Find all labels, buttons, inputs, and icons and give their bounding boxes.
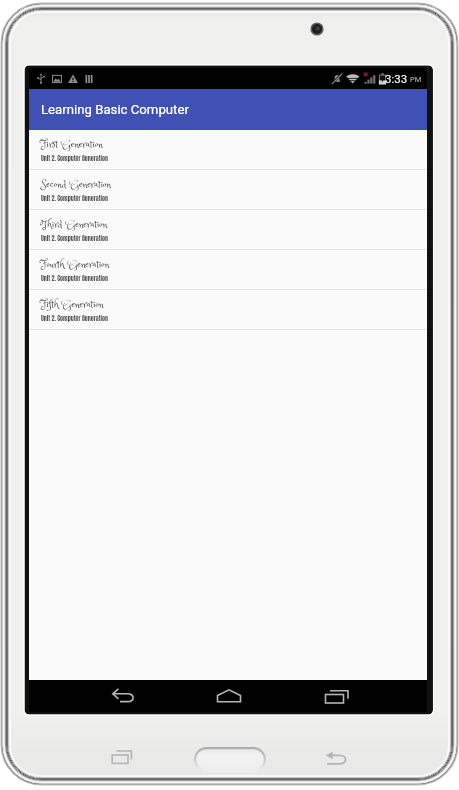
staticText: Second Generation: [41, 177, 111, 193]
button[interactable]: First Generation: [29, 130, 427, 170]
staticText: Unit 2. Computer Generation: [41, 314, 108, 323]
staticText: Fourth Generation: [41, 257, 110, 273]
staticText: 3:33: [385, 72, 408, 85]
staticText: Unit 2. Computer Generation: [41, 194, 108, 203]
button[interactable]: Home: [193, 745, 271, 775]
button[interactable]: Third Generation: [29, 210, 427, 250]
button[interactable]: Fourth Generation: [29, 250, 427, 290]
button[interactable]: Recent apps: [96, 737, 144, 781]
staticText: Unit 2. Computer Generation: [41, 274, 108, 283]
button[interactable]: Home: [201, 680, 257, 712]
staticText: First Generation: [41, 137, 103, 153]
button[interactable]: Second Generation: [29, 170, 427, 210]
staticText: Fifth Generation: [41, 297, 104, 313]
staticText: Third Generation: [41, 217, 108, 233]
button[interactable]: Recent apps: [307, 680, 363, 712]
staticText: PM: [410, 75, 422, 84]
staticText: Unit 2. Computer Generation: [41, 154, 108, 163]
button[interactable]: Learning Basic Computer: [29, 89, 427, 130]
button[interactable]: Fifth Generation: [29, 290, 427, 330]
button[interactable]: Back: [312, 736, 360, 780]
staticText: Learning Basic Computer: [41, 102, 189, 117]
button[interactable]: Back: [95, 680, 151, 712]
staticText: Unit 2. Computer Generation: [41, 234, 108, 243]
